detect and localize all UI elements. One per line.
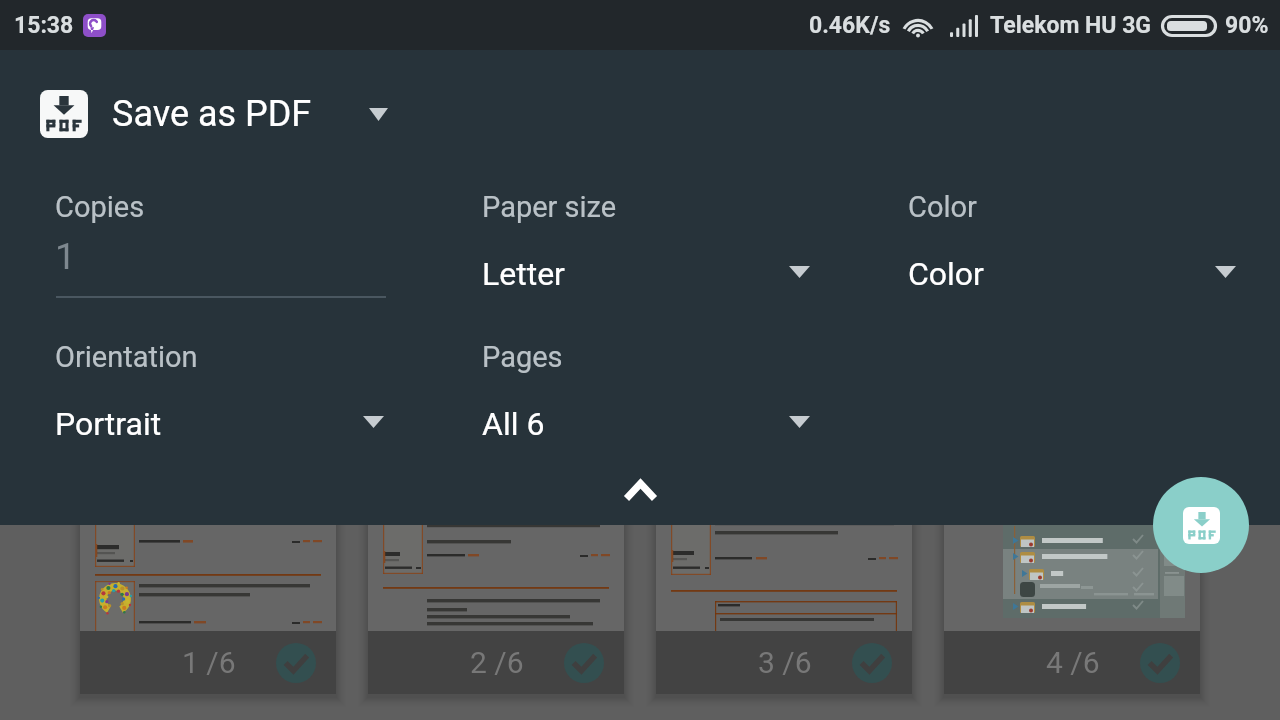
- button[interactable]: 1 /6: [80, 440, 336, 694]
- button[interactable]: Save as PDF: [1153, 477, 1249, 573]
- staticText: 15:38: [14, 12, 74, 39]
- staticText: Portrait: [55, 405, 162, 443]
- button[interactable]: 1: [56, 235, 386, 298]
- staticText: Copies: [55, 190, 145, 224]
- staticText: Orientation: [55, 340, 198, 374]
- staticText: Telekom HU 3G: [990, 12, 1152, 39]
- button[interactable]: 3 /6: [656, 440, 912, 694]
- button[interactable]: Page 1 selected: [276, 643, 316, 683]
- button[interactable]: Save as PDF: [40, 78, 388, 150]
- button[interactable]: Collapse print options: [608, 467, 672, 515]
- staticText: All 6: [482, 405, 545, 443]
- button[interactable]: 2 /6: [368, 440, 624, 694]
- staticText: 2 /6: [470, 645, 524, 680]
- button[interactable]: Color: [897, 241, 1250, 299]
- staticText: 90%: [1225, 12, 1269, 39]
- button[interactable]: Letter: [471, 241, 824, 299]
- staticText: 4 /6: [1046, 645, 1100, 680]
- button[interactable]: Portrait: [44, 391, 398, 449]
- button[interactable]: 4 /6: [944, 440, 1200, 694]
- staticText: 1: [55, 235, 76, 278]
- staticText: 1 /6: [182, 645, 236, 680]
- staticText: Color: [908, 190, 977, 224]
- staticText: 0.46K/s: [809, 12, 891, 39]
- button[interactable]: Page 2 selected: [564, 643, 604, 683]
- staticText: Color: [908, 255, 984, 293]
- button[interactable]: All 6: [471, 391, 824, 449]
- button[interactable]: Page 4 selected: [1140, 643, 1180, 683]
- staticText: 3 /6: [758, 645, 812, 680]
- staticText: Pages: [482, 340, 563, 374]
- staticText: Paper size: [482, 190, 617, 224]
- button[interactable]: Page 3 selected: [852, 643, 892, 683]
- staticText: Save as PDF: [112, 93, 312, 135]
- staticText: Letter: [482, 255, 565, 293]
